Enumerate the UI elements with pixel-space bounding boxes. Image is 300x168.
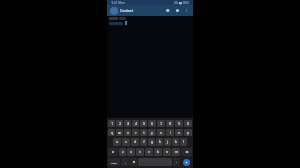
staticText: m xyxy=(175,150,178,154)
button[interactable]: a xyxy=(113,138,121,146)
staticText: 2 xyxy=(119,122,121,126)
staticText: 4 xyxy=(135,122,137,126)
button[interactable]: 7 xyxy=(157,120,165,127)
button[interactable]: y xyxy=(148,129,156,136)
button[interactable]: m xyxy=(172,148,180,156)
button[interactable]: Call xyxy=(174,7,181,14)
staticText: 1 xyxy=(111,122,113,126)
staticText: f xyxy=(143,140,145,144)
staticText: b xyxy=(157,150,159,154)
staticText: l xyxy=(183,140,184,144)
staticText: w xyxy=(118,131,121,135)
button[interactable]: 5 xyxy=(140,120,147,127)
staticText: p xyxy=(187,131,189,135)
button[interactable]: 2 xyxy=(116,120,123,127)
button[interactable]: 1 xyxy=(108,120,115,127)
staticText: v xyxy=(148,150,150,154)
staticText: j xyxy=(167,140,168,144)
staticText: 4G xyxy=(174,1,178,5)
button[interactable]: Emoji xyxy=(130,158,137,166)
button[interactable]: q xyxy=(108,129,115,136)
button[interactable]: w xyxy=(116,129,123,136)
staticText: k xyxy=(175,140,177,144)
button[interactable]: e xyxy=(124,129,131,136)
button[interactable]: r xyxy=(132,129,139,136)
button[interactable]: p xyxy=(184,129,192,136)
staticText: 6 xyxy=(151,122,153,126)
button[interactable]: s xyxy=(122,138,130,146)
button[interactable]: c xyxy=(136,148,144,156)
button[interactable]: o xyxy=(175,129,183,136)
staticText: o xyxy=(178,131,180,135)
button[interactable]: 9 xyxy=(175,120,183,127)
button[interactable]: i xyxy=(166,129,174,136)
staticText: 5 xyxy=(143,122,145,126)
staticText: g xyxy=(151,140,153,144)
button[interactable]: n xyxy=(163,148,171,156)
button[interactable]: 8 xyxy=(166,120,174,127)
button[interactable]: Contact avatar xyxy=(110,7,118,15)
staticText: 8 xyxy=(169,122,171,126)
button[interactable]: z xyxy=(119,148,126,156)
staticText: s xyxy=(125,140,127,144)
staticText: r xyxy=(135,131,137,135)
staticText: u xyxy=(160,131,162,135)
button[interactable]: 3 xyxy=(124,120,131,127)
staticText: 3 xyxy=(127,122,129,126)
button[interactable]: g xyxy=(148,138,155,146)
button[interactable]: h xyxy=(156,138,163,146)
staticText: x xyxy=(130,150,132,154)
button[interactable]: u xyxy=(157,129,165,136)
staticText: 84% xyxy=(183,1,189,5)
staticText: d xyxy=(134,140,136,144)
staticText: , xyxy=(125,160,126,164)
button[interactable]: Send xyxy=(181,158,192,166)
button[interactable]: b xyxy=(154,148,162,156)
staticText: i xyxy=(170,131,171,135)
button[interactable]: Video call xyxy=(165,7,172,14)
staticText: n xyxy=(166,150,168,154)
button[interactable]: f xyxy=(140,138,147,146)
button[interactable]: t xyxy=(140,129,147,136)
staticText: 9:41 Mon xyxy=(111,1,125,5)
button[interactable]: , xyxy=(121,158,129,166)
button[interactable]: 0 xyxy=(184,120,192,127)
staticText: h xyxy=(159,140,161,144)
button[interactable]: . xyxy=(173,158,180,166)
staticText: 7 xyxy=(160,122,162,126)
staticText: e xyxy=(127,131,129,135)
staticText: y xyxy=(151,131,153,135)
button[interactable]: j xyxy=(164,138,171,146)
staticText: c xyxy=(139,150,141,154)
button[interactable]: l xyxy=(180,138,187,146)
staticText: ?123 xyxy=(111,161,117,164)
button[interactable]: x xyxy=(127,148,135,156)
staticText: a xyxy=(116,140,118,144)
button[interactable]: ?123 xyxy=(108,158,120,166)
staticText: . xyxy=(176,160,177,164)
button[interactable]: v xyxy=(145,148,153,156)
staticText: Contact xyxy=(120,8,133,13)
button[interactable]: d xyxy=(131,138,139,146)
staticText: q xyxy=(111,131,113,135)
button[interactable]: k xyxy=(172,138,179,146)
button[interactable]: Backspace xyxy=(181,148,192,156)
staticText: 9 xyxy=(178,122,180,126)
staticText: t xyxy=(143,131,145,135)
button[interactable]: 4 xyxy=(132,120,139,127)
staticText: z xyxy=(122,150,124,154)
button[interactable]: More options xyxy=(183,7,190,14)
staticText: 0 xyxy=(187,122,189,126)
button[interactable]: Shift xyxy=(108,148,118,156)
button[interactable]: 6 xyxy=(148,120,156,127)
